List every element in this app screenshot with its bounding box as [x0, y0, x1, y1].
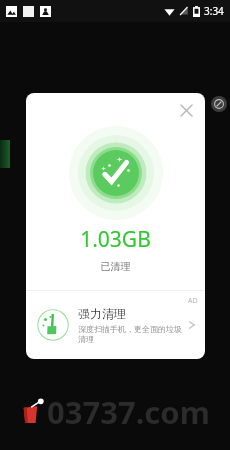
staticText: 1.03GB — [26, 225, 205, 254]
staticText: 3:34 — [204, 4, 224, 18]
staticText: 深度扫描手机，更全面的垃圾清理 — [78, 324, 185, 345]
button[interactable]: Block ads — [211, 96, 227, 112]
staticText: AD — [188, 296, 198, 306]
staticText: 已清理 — [26, 260, 205, 273]
staticText: 强力清理 — [78, 306, 126, 321]
staticText: 03737.com — [47, 391, 210, 433]
button[interactable]: AD — [26, 291, 205, 359]
button[interactable]: Close — [173, 97, 199, 123]
